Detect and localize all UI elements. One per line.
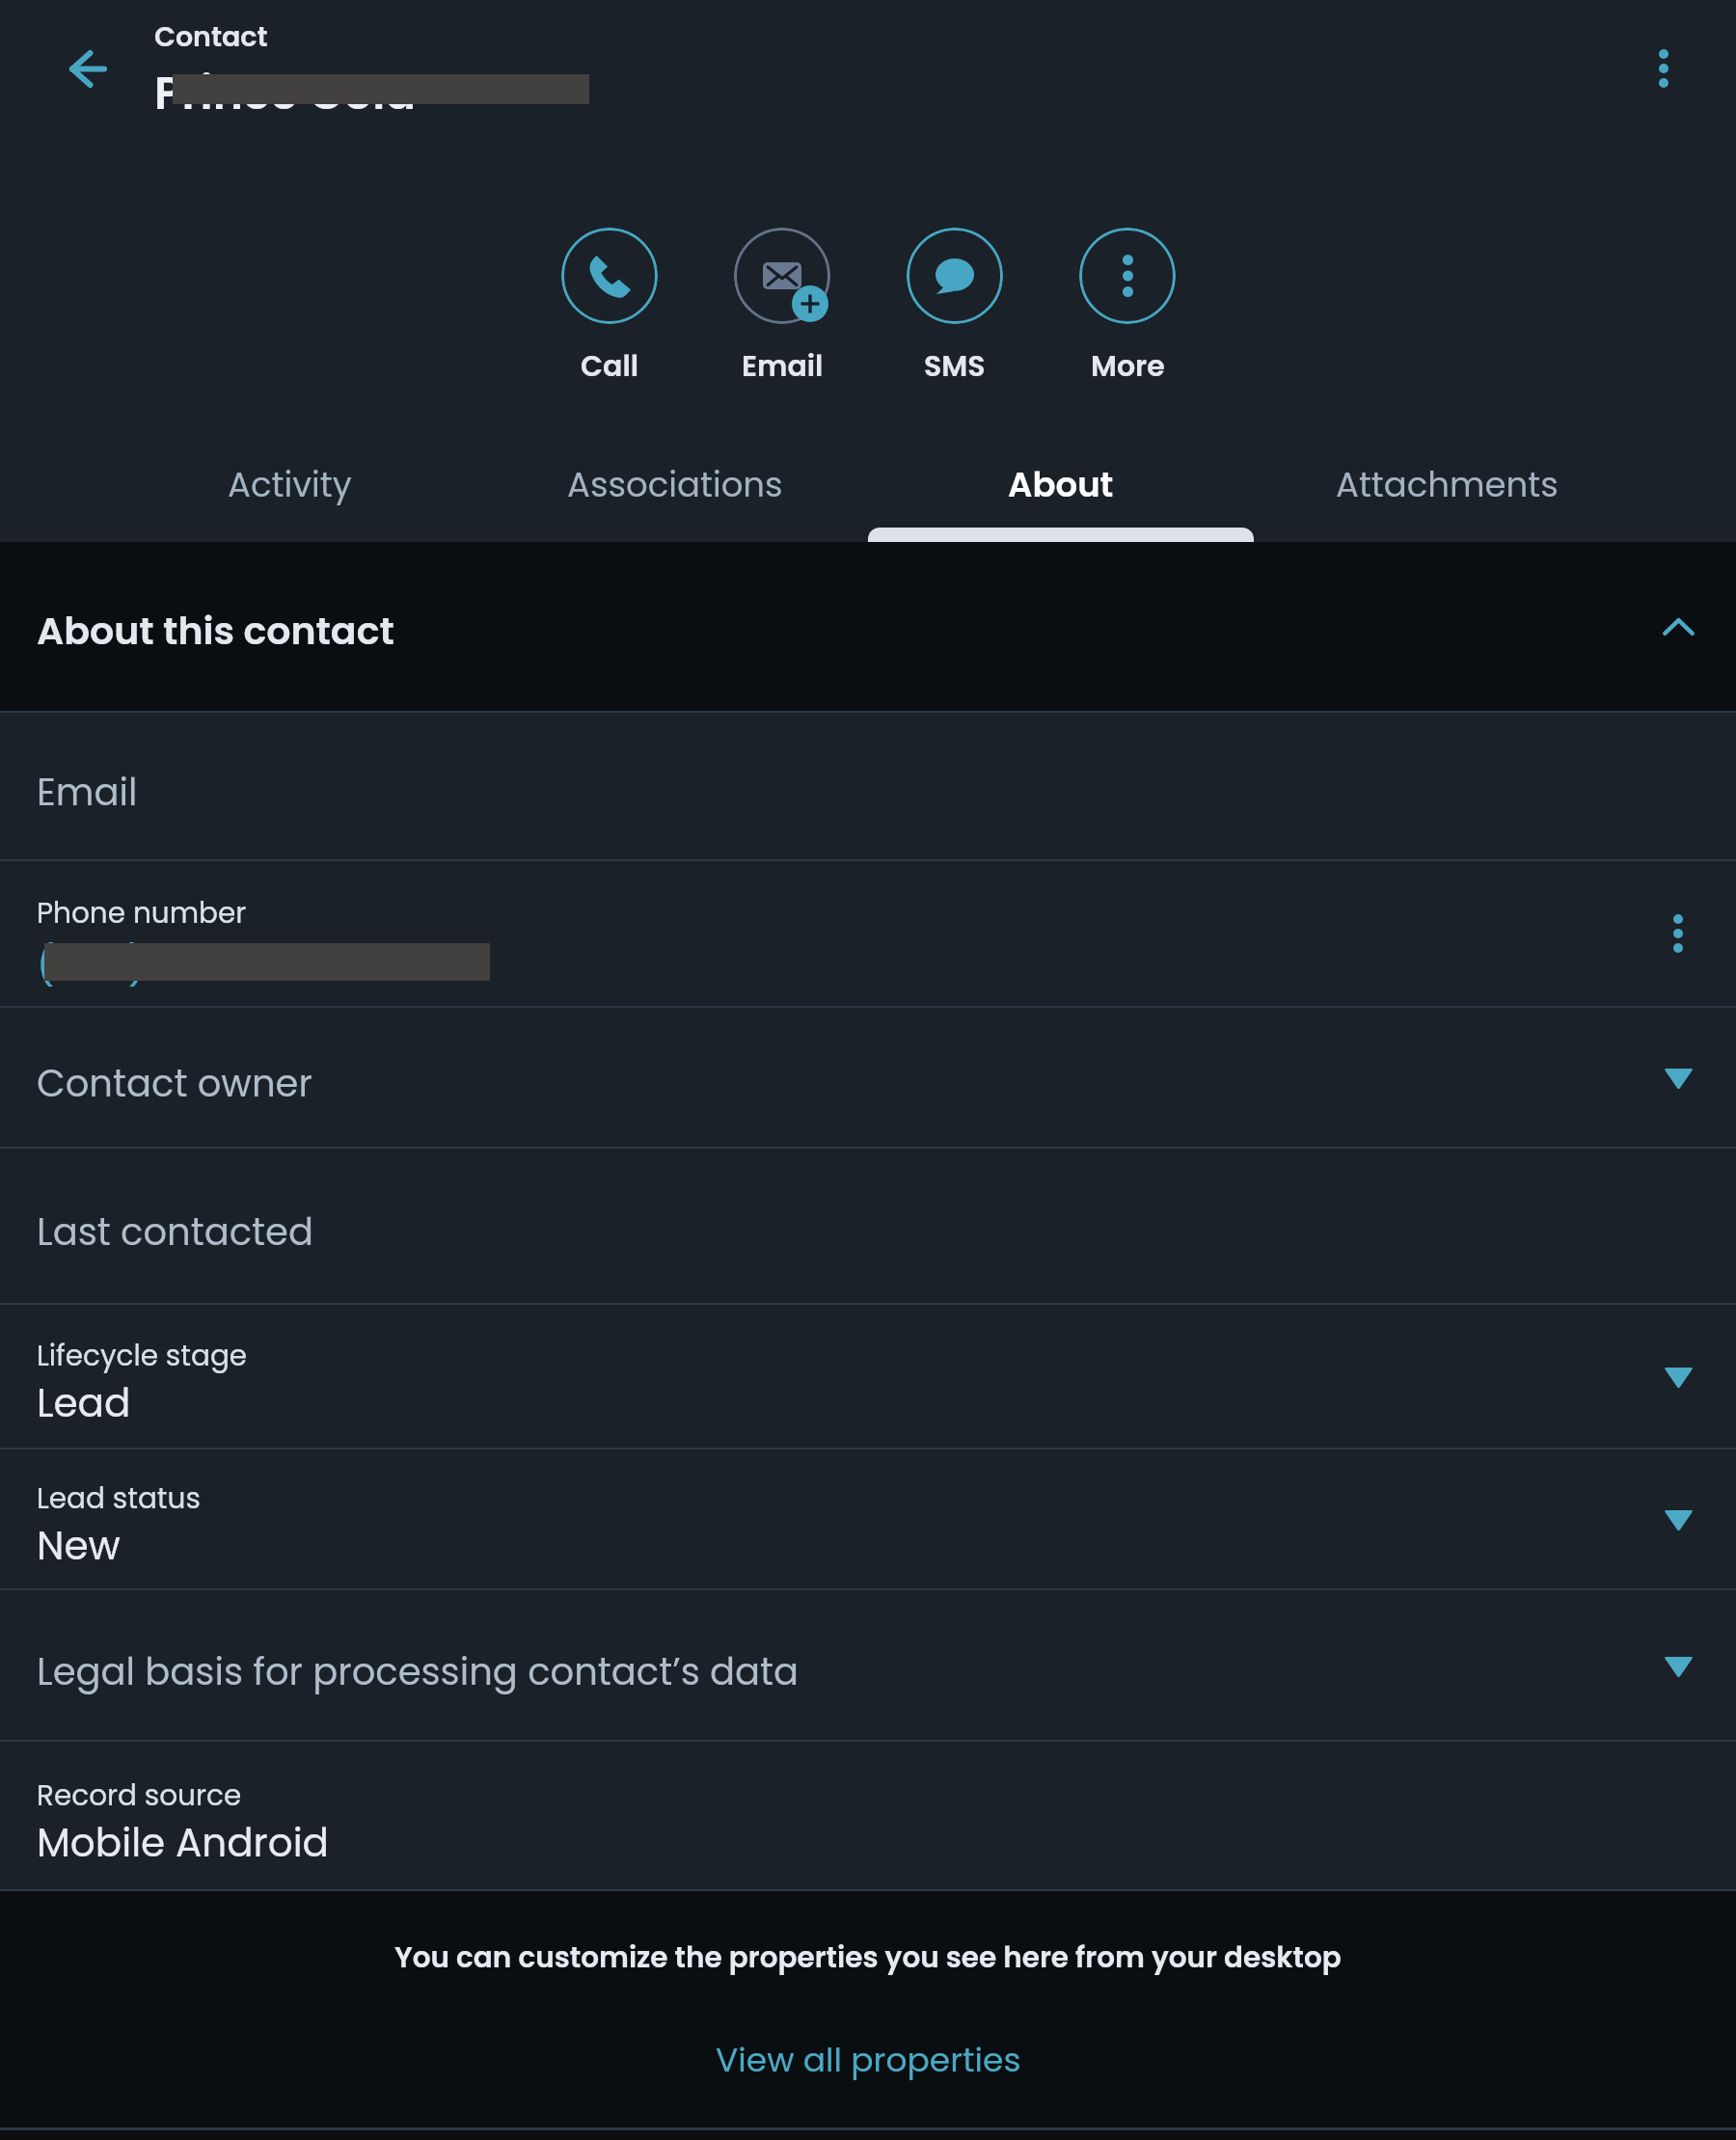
- button[interactable]: Back: [20, 1, 155, 136]
- button[interactable]: About: [868, 426, 1254, 542]
- staticText: More: [1091, 346, 1165, 387]
- staticText: Record source: [37, 1775, 242, 1815]
- button[interactable]: Contact owner: [0, 1008, 1736, 1147]
- staticText: (000) 000-0000: [37, 937, 350, 992]
- staticText: Prince Gold: [154, 62, 417, 125]
- staticText: Email: [37, 767, 138, 819]
- staticText: Phone number: [37, 893, 247, 933]
- button[interactable]: Activity: [96, 426, 482, 542]
- button[interactable]: Expand: [1636, 1035, 1721, 1120]
- staticText: Attachments: [1336, 461, 1559, 509]
- button[interactable]: About this contact: [0, 542, 1736, 711]
- staticText: You can customize the properties you see…: [394, 1937, 1342, 1977]
- staticText: Contact owner: [37, 1058, 312, 1110]
- button[interactable]: Attachments: [1254, 426, 1640, 542]
- button[interactable]: Expand: [1636, 1334, 1721, 1419]
- staticText: Last contacted: [37, 1206, 314, 1259]
- button[interactable]: Expand: [1636, 1623, 1721, 1708]
- staticText: New: [37, 1518, 121, 1573]
- staticText: Call: [581, 346, 639, 387]
- button[interactable]: Collapse section: [1636, 584, 1721, 669]
- staticText: SMS: [924, 346, 986, 387]
- staticText: Lead: [37, 1375, 131, 1430]
- button[interactable]: More options: [1596, 1, 1731, 136]
- staticText: Associations: [567, 461, 783, 509]
- button[interactable]: Email: [0, 713, 1736, 859]
- button[interactable]: Expand: [1636, 1476, 1721, 1561]
- button[interactable]: Record source: [0, 1742, 1736, 1889]
- button[interactable]: Phone number: [0, 861, 1736, 1006]
- button[interactable]: Lifecycle stage: [0, 1305, 1736, 1448]
- staticText: About: [1008, 461, 1114, 509]
- button[interactable]: SMS: [907, 228, 1003, 387]
- staticText: View all properties: [716, 2037, 1021, 2083]
- button[interactable]: Email: [734, 228, 830, 387]
- button[interactable]: More: [1079, 228, 1176, 387]
- staticText: Lifecycle stage: [37, 1336, 248, 1375]
- button[interactable]: Call: [561, 228, 658, 387]
- button[interactable]: Row actions: [1636, 891, 1721, 976]
- staticText: Email: [742, 346, 824, 387]
- staticText: Lead status: [37, 1478, 201, 1518]
- staticText: Contact: [154, 17, 268, 56]
- button[interactable]: Last contacted: [0, 1149, 1736, 1303]
- button[interactable]: Legal basis for processing contact’s dat…: [0, 1590, 1736, 1740]
- button[interactable]: Lead status: [0, 1449, 1736, 1588]
- staticText: Mobile Android: [37, 1815, 329, 1870]
- staticText: About this contact: [37, 605, 394, 658]
- button[interactable]: Associations: [482, 426, 868, 542]
- staticText: Activity: [228, 461, 352, 509]
- button[interactable]: View all properties: [692, 2027, 1044, 2093]
- staticText: Legal basis for processing contact’s dat…: [37, 1646, 800, 1698]
